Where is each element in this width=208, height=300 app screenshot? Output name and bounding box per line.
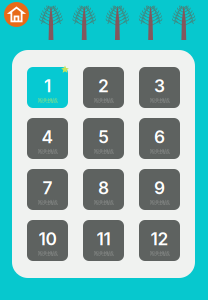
button[interactable]: 7: [27, 169, 68, 210]
button[interactable]: 9: [139, 169, 180, 210]
button[interactable]: 4: [27, 118, 68, 159]
staticText: 1: [44, 75, 51, 96]
staticText: 闯关挑战: [93, 199, 113, 206]
staticText: 闯关挑战: [93, 250, 113, 257]
button[interactable]: 3: [139, 67, 180, 108]
button[interactable]: Home: [2, 0, 31, 29]
staticText: 6: [154, 126, 165, 147]
staticText: 2: [98, 75, 109, 96]
staticText: 7: [42, 177, 52, 198]
staticText: 4: [41, 126, 53, 147]
button[interactable]: 12: [139, 220, 180, 261]
staticText: 闯关挑战: [37, 148, 57, 155]
staticText: 闯关挑战: [37, 250, 57, 257]
button[interactable]: 2: [83, 67, 124, 108]
staticText: 闯关挑战: [149, 250, 169, 257]
staticText: 5: [98, 126, 109, 147]
staticText: 9: [154, 177, 165, 198]
button[interactable]: 10: [27, 220, 68, 261]
staticText: 闯关挑战: [149, 148, 169, 155]
staticText: 12: [150, 228, 168, 249]
staticText: 闯关挑战: [149, 97, 169, 104]
staticText: 闯关挑战: [93, 148, 113, 155]
staticText: 闯关挑战: [149, 199, 169, 206]
staticText: 10: [38, 228, 56, 249]
button[interactable]: 8: [83, 169, 124, 210]
button[interactable]: 1: [27, 67, 68, 108]
staticText: 11: [96, 228, 110, 249]
staticText: 3: [154, 75, 165, 96]
button[interactable]: 11: [83, 220, 124, 261]
button[interactable]: 5: [83, 118, 124, 159]
staticText: 闯关挑战: [93, 97, 113, 104]
staticText: 8: [98, 177, 109, 198]
button[interactable]: 6: [139, 118, 180, 159]
staticText: 闯关挑战: [37, 97, 57, 104]
staticText: 闯关挑战: [37, 199, 57, 206]
